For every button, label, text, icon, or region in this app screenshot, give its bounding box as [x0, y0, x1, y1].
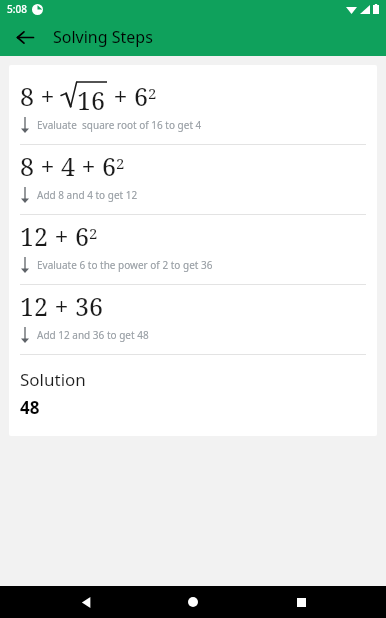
staticText: Solving Steps	[53, 26, 153, 48]
staticText: 16	[77, 83, 105, 113]
button[interactable]: Recents	[279, 586, 323, 618]
staticText: Add 12 and 36 to get 48	[37, 328, 149, 342]
staticText: 5:08	[7, 2, 27, 16]
button[interactable]: 12 + 36	[20, 285, 366, 354]
staticText: 8 + 4 + 62	[20, 149, 125, 183]
button[interactable]: Home	[171, 586, 215, 618]
button[interactable]: 8 +	[20, 75, 366, 144]
button[interactable]: 12 + 62	[20, 215, 366, 284]
button[interactable]: Back	[8, 20, 42, 54]
staticText: 12 + 36	[20, 289, 103, 323]
staticText: + 62	[107, 79, 157, 113]
staticText: Evaluate 6 to the power of 2 to get 36	[37, 258, 213, 272]
staticText: Evaluate square root of 16 to get 4	[37, 118, 202, 132]
staticText: Solution	[20, 368, 86, 391]
button[interactable]: 8 + 4 + 62	[20, 145, 366, 214]
staticText: 8 +	[20, 79, 61, 113]
button[interactable]: Back	[64, 586, 108, 618]
staticText: Add 8 and 4 to get 12	[37, 188, 138, 202]
staticText: 48	[20, 396, 40, 419]
staticText: 12 + 62	[20, 219, 98, 253]
